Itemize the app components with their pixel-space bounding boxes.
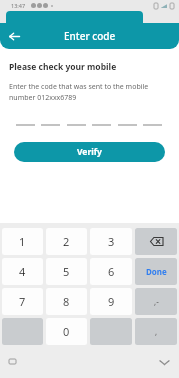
button[interactable]: 4	[2, 258, 43, 285]
staticText: 6	[108, 264, 115, 279]
staticText: 1	[19, 234, 26, 249]
button[interactable]	[118, 122, 137, 128]
button[interactable]: 9	[90, 288, 132, 315]
staticText: Please check your mobile	[9, 61, 117, 73]
button[interactable]: Hide keyboard	[157, 355, 171, 369]
button[interactable]: 5	[46, 258, 87, 285]
staticText: 9	[108, 294, 115, 309]
staticText: 8	[63, 294, 70, 309]
staticText: 13:47	[11, 2, 26, 9]
button[interactable]	[143, 122, 162, 128]
button[interactable]: Done	[135, 258, 177, 285]
button[interactable]: Backspace	[135, 228, 177, 255]
staticText: 0	[63, 324, 70, 339]
button[interactable]: 3	[90, 228, 132, 255]
button[interactable]	[41, 122, 60, 128]
staticText: 2	[63, 234, 70, 249]
button[interactable]	[16, 122, 35, 128]
button[interactable]: Verify	[14, 142, 165, 162]
button[interactable]: 0	[46, 318, 87, 345]
button[interactable]: ,-	[135, 288, 177, 315]
staticText: 3	[108, 234, 115, 249]
staticText: Enter code	[64, 29, 116, 43]
button[interactable]: 2	[46, 228, 87, 255]
button[interactable]	[67, 122, 86, 128]
button[interactable]: 7	[2, 288, 43, 315]
staticText: ,	[155, 326, 158, 337]
button[interactable]: 8	[46, 288, 87, 315]
staticText: Done	[146, 266, 167, 277]
button[interactable]: Change keyboard	[6, 355, 19, 368]
staticText: 7	[19, 294, 26, 309]
staticText: Enter the code that was sent to the mobi…	[9, 82, 170, 102]
button[interactable]: 1	[2, 228, 43, 255]
button[interactable]: Back	[4, 26, 24, 46]
button[interactable]	[92, 122, 111, 128]
staticText: ,-	[154, 296, 159, 307]
staticText: 4	[19, 264, 26, 279]
staticText: Verify	[77, 146, 102, 158]
button[interactable]: 6	[90, 258, 132, 285]
staticText: 5	[63, 264, 70, 279]
